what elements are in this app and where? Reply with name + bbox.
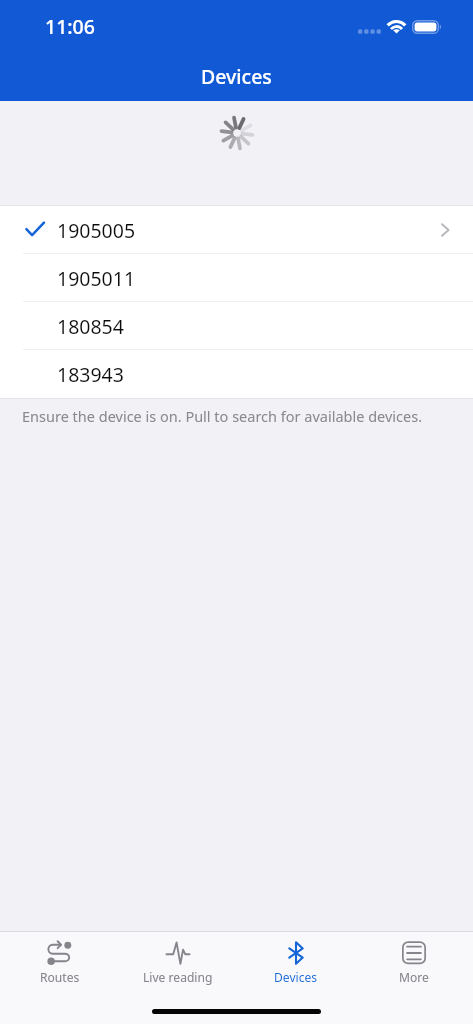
other: Live reading bbox=[166, 941, 190, 965]
staticText: Devices bbox=[274, 969, 318, 985]
staticText: 11:06 bbox=[45, 13, 95, 40]
staticText: More bbox=[399, 969, 429, 985]
button[interactable]: 183943 bbox=[0, 350, 473, 398]
button[interactable]: 180854 bbox=[0, 302, 473, 350]
other: Routes bbox=[48, 941, 72, 965]
other: Devices bbox=[284, 941, 308, 965]
button[interactable]: Routes bbox=[0, 932, 119, 1024]
staticText: 1905005 bbox=[57, 217, 136, 244]
staticText: 180854 bbox=[57, 313, 124, 340]
staticText: Devices bbox=[201, 63, 272, 90]
button[interactable]: 1905005 bbox=[0, 206, 473, 254]
staticText: Routes bbox=[40, 969, 80, 985]
button[interactable]: 1905011 bbox=[0, 254, 473, 302]
staticText: 1905011 bbox=[57, 265, 136, 292]
staticText: 183943 bbox=[57, 361, 124, 388]
button[interactable]: Live reading bbox=[119, 932, 237, 1024]
other: More bbox=[402, 941, 426, 965]
button[interactable]: Devices bbox=[237, 932, 355, 1024]
staticText: Live reading bbox=[143, 969, 213, 985]
staticText: Ensure the device is on. Pull to search … bbox=[22, 406, 423, 426]
button[interactable]: More bbox=[355, 932, 473, 1024]
